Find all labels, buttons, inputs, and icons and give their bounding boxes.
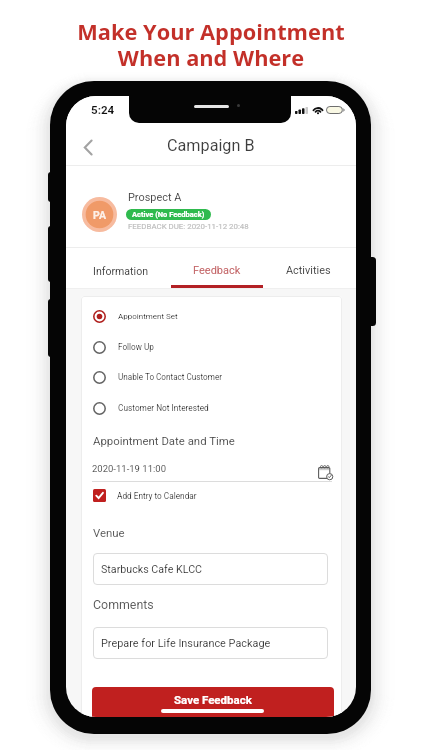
staticText: Feedback xyxy=(193,264,241,277)
staticText: Campaign B xyxy=(167,136,255,155)
staticText: 5:24 xyxy=(91,103,115,117)
staticText: Appointment Set xyxy=(118,312,178,321)
staticText: Active (No Feedback) xyxy=(132,210,205,219)
staticText: Venue xyxy=(93,526,125,539)
staticText: Information xyxy=(93,265,149,277)
button[interactable]: Select date xyxy=(314,461,336,483)
staticText: Follow Up xyxy=(118,342,154,352)
staticText: Customer Not Interested xyxy=(118,403,209,413)
button[interactable]: Appointment Set xyxy=(93,305,333,327)
staticText: FEEDBACK DUE: 2020-11-12 20:48 xyxy=(128,222,249,231)
button[interactable]: Follow Up xyxy=(93,336,333,358)
button[interactable]: Customer Not Interested xyxy=(93,397,333,419)
button[interactable]: Save Feedback xyxy=(92,687,334,717)
staticText: Starbucks Cafe KLCC xyxy=(101,563,203,576)
staticText: Activities xyxy=(286,264,331,277)
staticText: Make Your Appointment When and Where xyxy=(0,17,422,72)
staticText: Prepare for Life Insurance Package xyxy=(101,637,271,650)
button[interactable]: Add Entry to Calendar xyxy=(93,488,197,503)
button[interactable]: Starbucks Cafe KLCC xyxy=(93,553,328,585)
button[interactable]: Activities xyxy=(262,255,354,286)
staticText: PA xyxy=(93,209,106,221)
button[interactable]: Unable To Contact Customer xyxy=(93,366,333,388)
staticText: Add Entry to Calendar xyxy=(117,491,197,501)
staticText: Save Feedback xyxy=(174,693,252,706)
button[interactable]: Information xyxy=(75,255,167,286)
button[interactable]: Prepare for Life Insurance Package xyxy=(93,627,328,659)
button[interactable]: Feedback xyxy=(171,255,263,286)
staticText: 2020-11-19 11:00 xyxy=(92,463,166,474)
staticText: Unable To Contact Customer xyxy=(118,372,222,382)
staticText: Appointment Date and Time xyxy=(93,434,235,447)
staticText: Prospect A xyxy=(128,191,182,204)
button[interactable]: Back xyxy=(76,133,100,161)
staticText: Comments xyxy=(93,597,154,612)
